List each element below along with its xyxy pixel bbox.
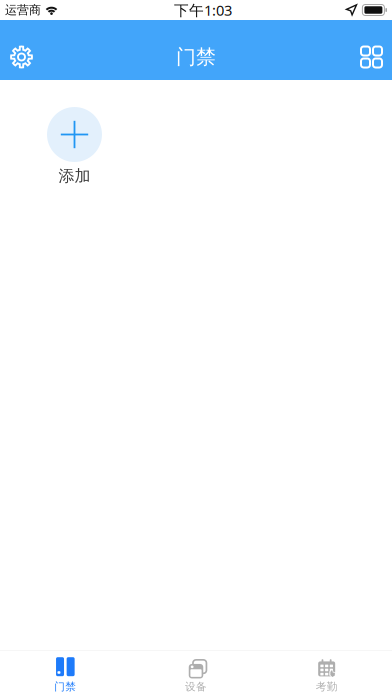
button[interactable]: 添加 xyxy=(27,107,122,186)
button[interactable]: Grid view xyxy=(351,38,392,75)
button[interactable]: 设备 xyxy=(131,650,261,696)
button[interactable]: 考勤 xyxy=(261,650,392,696)
staticText: 运营商 xyxy=(5,3,41,17)
staticText: 门禁 xyxy=(54,680,76,693)
staticText: 考勤 xyxy=(316,680,338,693)
button[interactable]: 门禁 xyxy=(0,650,131,696)
staticText: 门禁 xyxy=(176,45,216,69)
staticText: 添加 xyxy=(58,166,90,186)
staticText: 设备 xyxy=(185,680,207,693)
staticText: 下午1:03 xyxy=(174,0,232,20)
button[interactable]: Settings xyxy=(0,37,41,76)
